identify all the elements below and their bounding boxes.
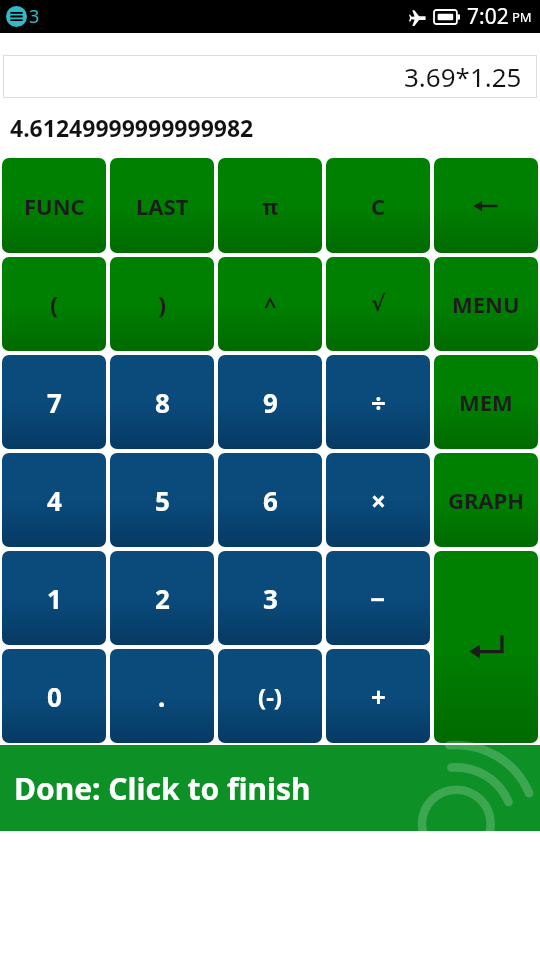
staticText: + bbox=[371, 679, 386, 714]
other: Airplane mode bbox=[409, 8, 427, 26]
button[interactable]: 6 bbox=[218, 453, 322, 547]
staticText: ÷ bbox=[371, 385, 386, 420]
staticText: 4 bbox=[47, 483, 62, 518]
button[interactable]: 3.69*1.25 bbox=[4, 56, 536, 97]
button[interactable]: 5 bbox=[110, 453, 214, 547]
button[interactable]: + bbox=[326, 649, 430, 743]
button[interactable]: × bbox=[326, 453, 430, 547]
button[interactable]: 7 bbox=[2, 355, 106, 449]
staticText: 8 bbox=[155, 385, 170, 420]
staticText: 5 bbox=[155, 483, 170, 518]
button[interactable]: LAST bbox=[110, 158, 214, 253]
staticText: 6 bbox=[263, 483, 278, 518]
button[interactable]: 9 bbox=[218, 355, 322, 449]
other: Battery bbox=[434, 10, 460, 24]
staticText: 1 bbox=[47, 581, 62, 616]
button[interactable]: 4 bbox=[2, 453, 106, 547]
button[interactable]: 8 bbox=[110, 355, 214, 449]
button[interactable]: ^ bbox=[218, 257, 322, 351]
button[interactable]: π bbox=[218, 158, 322, 253]
button[interactable]: − bbox=[326, 551, 430, 645]
button[interactable]: 3 bbox=[218, 551, 322, 645]
staticText: × bbox=[371, 483, 386, 518]
button[interactable]: 2 bbox=[110, 551, 214, 645]
staticText: 7:02 bbox=[467, 2, 509, 31]
button[interactable]: 0 bbox=[2, 649, 106, 743]
staticText: √ bbox=[371, 291, 386, 317]
button[interactable]: (-) bbox=[218, 649, 322, 743]
staticText: LAST bbox=[136, 191, 189, 221]
staticText: Done: Click to finish bbox=[14, 768, 311, 809]
button[interactable]: √ bbox=[326, 257, 430, 351]
staticText: ( bbox=[50, 288, 59, 321]
staticText: ) bbox=[158, 288, 167, 321]
button[interactable]: Done: Click to finish bbox=[0, 745, 540, 831]
staticText: 9 bbox=[263, 385, 278, 420]
button[interactable]: Backspace bbox=[434, 158, 538, 253]
staticText: 0 bbox=[47, 679, 62, 714]
staticText: 3 bbox=[29, 4, 40, 29]
staticText: FUNC bbox=[24, 191, 85, 221]
staticText: (-) bbox=[258, 680, 282, 713]
button[interactable]: GRAPH bbox=[434, 453, 538, 547]
button[interactable]: FUNC bbox=[2, 158, 106, 253]
staticText: 3.69*1.25 bbox=[404, 59, 522, 94]
staticText: ^ bbox=[264, 289, 277, 319]
staticText: π bbox=[262, 191, 279, 221]
staticText: MENU bbox=[452, 289, 520, 319]
button[interactable]: C bbox=[326, 158, 430, 253]
staticText: 7 bbox=[47, 385, 62, 420]
staticText: 3 bbox=[263, 581, 278, 616]
staticText: C bbox=[371, 191, 386, 221]
button[interactable]: MENU bbox=[434, 257, 538, 351]
button[interactable]: 1 bbox=[2, 551, 106, 645]
staticText: 4.61249999999999982 bbox=[10, 112, 254, 143]
staticText: 2 bbox=[155, 581, 170, 616]
button[interactable]: ( bbox=[2, 257, 106, 351]
staticText: GRAPH bbox=[448, 485, 525, 515]
staticText: PM bbox=[512, 8, 532, 26]
button[interactable]: ) bbox=[110, 257, 214, 351]
button[interactable]: . bbox=[110, 649, 214, 743]
staticText: − bbox=[370, 581, 386, 616]
button[interactable]: MEM bbox=[434, 355, 538, 449]
staticText: . bbox=[158, 679, 166, 714]
staticText: MEM bbox=[459, 387, 513, 417]
button[interactable]: ÷ bbox=[326, 355, 430, 449]
button[interactable]: Enter bbox=[434, 551, 538, 743]
